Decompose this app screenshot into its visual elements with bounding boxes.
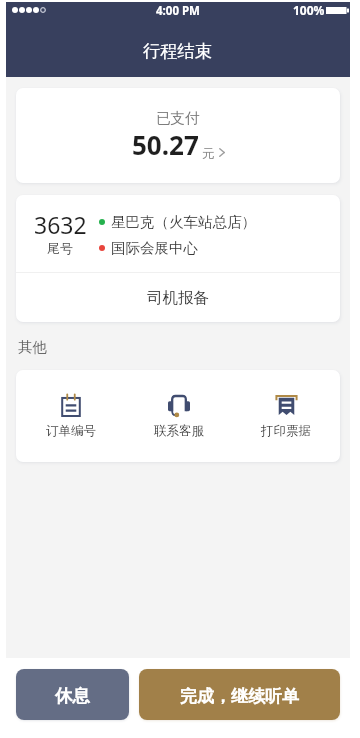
button[interactable]: Print receipt <box>246 370 326 449</box>
staticText: 已支付 <box>156 109 200 127</box>
other: Order number <box>60 394 82 416</box>
staticText: 100% <box>293 2 325 18</box>
staticText: 完成，继续听单 <box>180 686 299 707</box>
button[interactable]: 完成，继续听单 <box>139 669 340 720</box>
button[interactable]: 司机报备 <box>16 273 340 322</box>
staticText: 国际会展中心 <box>111 239 198 257</box>
staticText: 订单编号 <box>46 423 96 439</box>
staticText: 行程结束 <box>143 40 213 62</box>
staticText: 星巴克（火车站总店） <box>111 213 256 231</box>
staticText: 4:00 PM <box>156 3 200 19</box>
button[interactable]: 休息 <box>16 669 129 720</box>
staticText: 50.27 <box>132 127 199 162</box>
other: Contact support <box>168 394 190 416</box>
other: Print receipt <box>275 394 297 416</box>
staticText: 司机报备 <box>147 288 209 308</box>
button[interactable]: Contact support <box>139 370 219 449</box>
staticText: 3632 <box>34 209 87 240</box>
staticText: 尾号 <box>47 240 73 256</box>
staticText: 打印票据 <box>261 423 311 439</box>
staticText: 元 <box>202 146 215 162</box>
button[interactable]: Order number <box>31 370 111 449</box>
staticText: 休息 <box>55 685 90 707</box>
staticText: 联系客服 <box>154 423 204 439</box>
staticText: 其他 <box>18 338 47 356</box>
button[interactable]: 已支付 <box>16 88 340 183</box>
